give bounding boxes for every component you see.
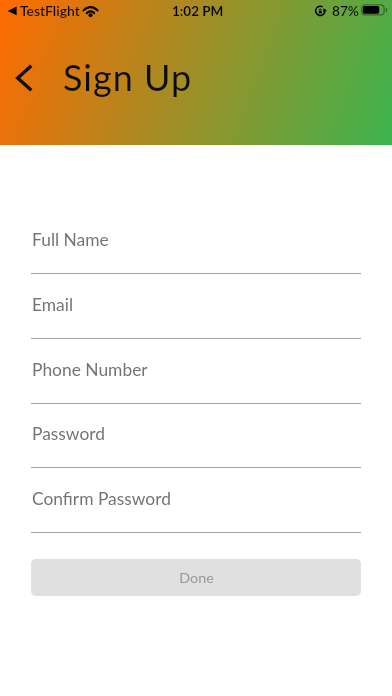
staticText: Full Name	[32, 229, 109, 250]
staticText: Email	[32, 294, 74, 315]
staticText: Done	[179, 569, 214, 586]
button[interactable]: Full Name	[31, 232, 361, 274]
staticText: Sign Up	[63, 55, 193, 98]
staticText: TestFlight	[20, 2, 80, 19]
button[interactable]: Password	[31, 426, 361, 468]
button[interactable]: Back	[2, 56, 46, 100]
staticText: 1:02 PM	[172, 3, 224, 19]
button[interactable]: Email	[31, 297, 361, 339]
button[interactable]: Confirm Password	[31, 491, 361, 533]
button[interactable]: Phone Number	[31, 362, 361, 404]
staticText: Phone Number	[32, 359, 148, 380]
button[interactable]: Done	[31, 559, 361, 596]
staticText: 87%	[332, 3, 359, 19]
staticText: Password	[32, 423, 105, 444]
staticText: Confirm Password	[32, 488, 171, 509]
